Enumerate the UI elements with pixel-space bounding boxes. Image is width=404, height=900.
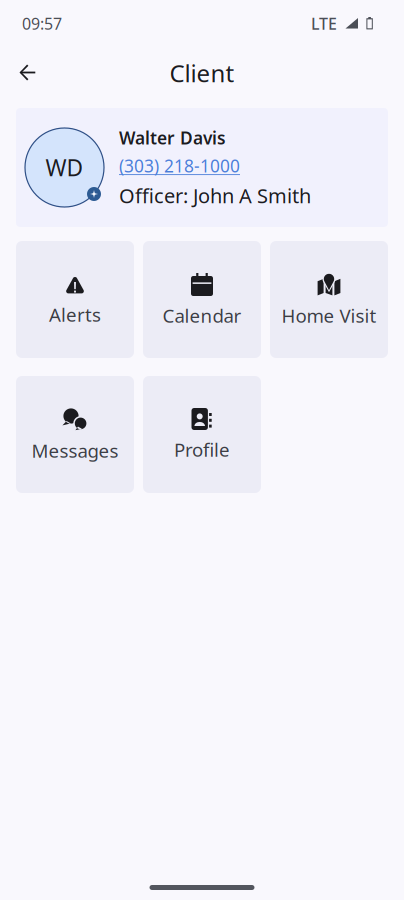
staticText: 09:57	[22, 13, 62, 34]
button[interactable]: Home Visit	[270, 241, 388, 358]
staticText: Home Visit	[281, 303, 376, 328]
button[interactable]: Profile	[143, 376, 261, 493]
button[interactable]: Alerts	[16, 241, 134, 358]
staticText: Walter Davis	[119, 126, 226, 149]
staticText: (303) 218-1000	[119, 154, 240, 177]
staticText: WD	[45, 152, 83, 182]
staticText: Client	[169, 57, 234, 89]
staticText: Alerts	[49, 302, 101, 327]
staticText: Officer: John A Smith	[119, 182, 311, 209]
button[interactable]: Calendar	[143, 241, 261, 358]
staticText: LTE	[311, 13, 337, 34]
staticText: Messages	[31, 438, 118, 463]
button[interactable]: (303) 218-1000	[119, 154, 240, 177]
staticText: Calendar	[162, 303, 241, 328]
button[interactable]: Back	[6, 50, 50, 94]
button[interactable]: Messages	[16, 376, 134, 493]
staticText: Profile	[174, 437, 230, 462]
